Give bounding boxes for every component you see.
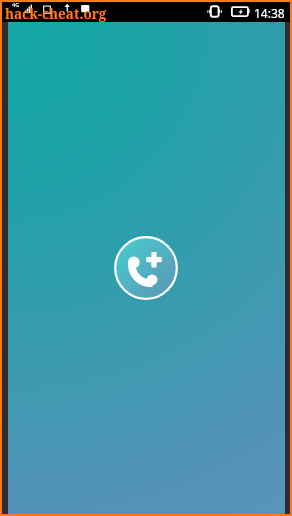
staticText: 14:38 [254, 5, 285, 21]
button[interactable]: Add call [106, 228, 186, 308]
staticText: 4G [12, 1, 20, 9]
staticText: hack-cheat.org [5, 5, 107, 23]
